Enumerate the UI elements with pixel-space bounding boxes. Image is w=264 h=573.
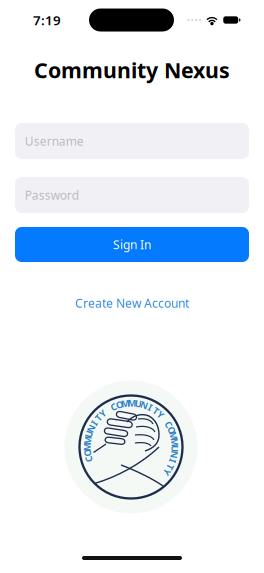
staticText: M	[170, 436, 179, 448]
staticText: N	[87, 422, 95, 434]
button[interactable]: Password	[15, 177, 249, 213]
staticText: U	[171, 442, 178, 455]
staticText: Create New Account	[75, 295, 189, 311]
staticText: Community Nexus	[34, 56, 230, 84]
staticText: N	[140, 399, 148, 411]
staticText: M	[121, 397, 130, 409]
staticText: I	[171, 455, 175, 467]
staticText: 7:19	[33, 11, 61, 29]
staticText: C	[110, 400, 116, 413]
staticText: T	[96, 411, 101, 424]
staticText: T	[153, 404, 158, 417]
staticText: U	[85, 428, 92, 440]
staticText: I	[92, 416, 96, 429]
staticText: M	[169, 430, 178, 442]
staticText: Sign In	[113, 236, 151, 252]
staticText: U	[135, 397, 142, 410]
staticText: Y	[100, 407, 106, 419]
button[interactable]: Username	[15, 123, 249, 159]
staticText: O	[116, 398, 123, 411]
button[interactable]: Create New Account	[65, 289, 199, 317]
staticText: I	[148, 401, 152, 414]
staticText: C	[86, 453, 92, 465]
staticText: Y	[158, 408, 164, 421]
staticText: M	[82, 440, 91, 453]
staticText: O	[84, 447, 91, 459]
staticText: N	[170, 449, 178, 461]
button[interactable]: Sign In	[15, 227, 249, 262]
staticText: M	[127, 397, 136, 409]
staticText: Username	[25, 133, 84, 149]
staticText: T	[168, 461, 173, 473]
staticText: O	[168, 424, 175, 436]
staticText: Password	[25, 187, 79, 203]
staticText: Y	[164, 466, 170, 478]
staticText: M	[83, 434, 92, 446]
staticText	[164, 413, 166, 425]
staticText: C	[166, 418, 172, 430]
